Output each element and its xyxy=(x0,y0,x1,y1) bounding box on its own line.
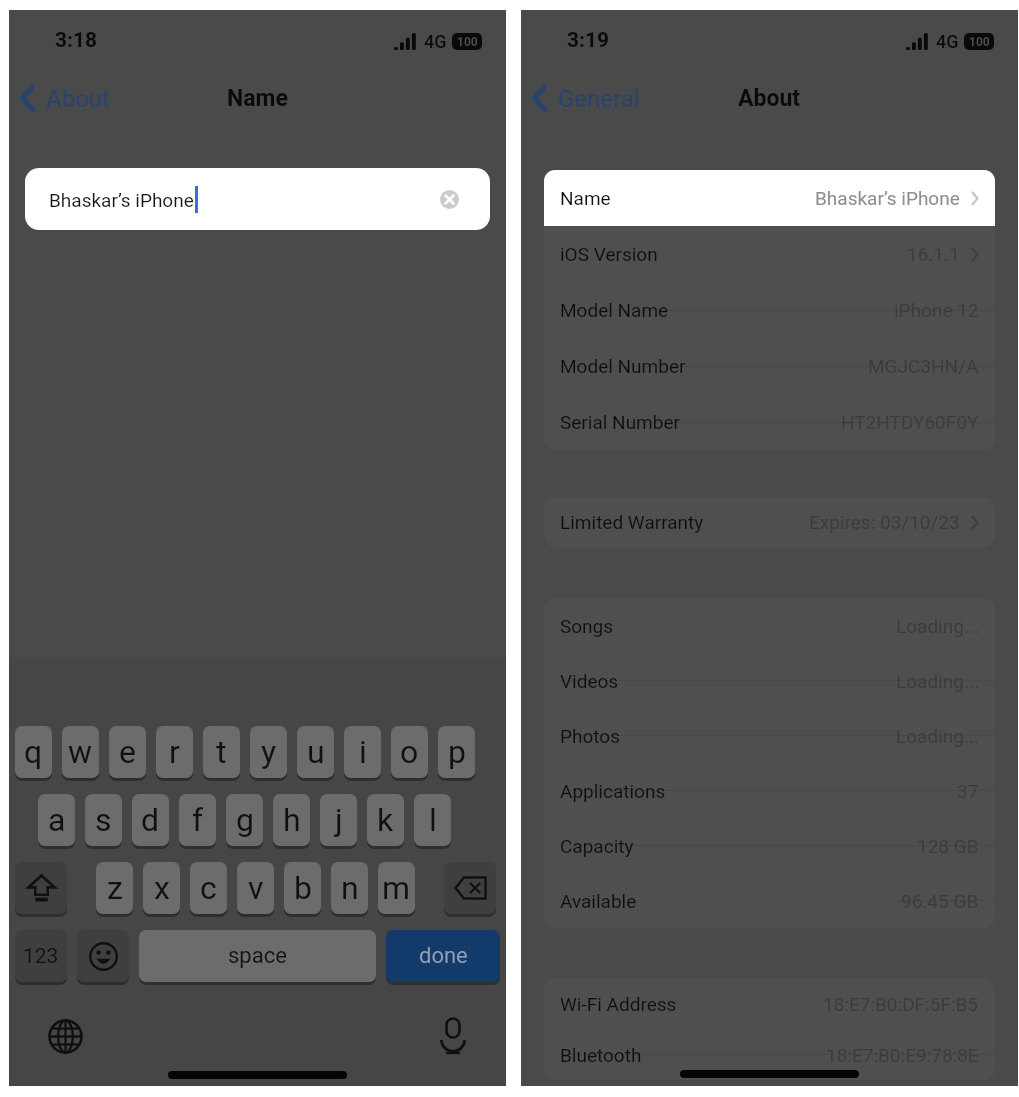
button[interactable]: About xyxy=(20,84,110,112)
staticText: e xyxy=(119,733,136,771)
button[interactable]: Model Number xyxy=(544,338,995,394)
staticText: q xyxy=(24,733,43,771)
button[interactable]: l xyxy=(414,794,451,846)
staticText: Photos xyxy=(560,725,620,747)
staticText: Applications xyxy=(560,780,666,802)
button[interactable]: w xyxy=(62,726,99,778)
button[interactable]: n xyxy=(331,862,368,914)
staticText: a xyxy=(48,801,66,839)
staticText: Bluetooth xyxy=(560,1044,642,1066)
staticText: m xyxy=(382,869,411,907)
button[interactable]: Bluetooth xyxy=(544,1029,995,1080)
staticText: i xyxy=(359,733,367,771)
button[interactable]: Change keyboard xyxy=(41,1012,89,1060)
button[interactable]: Emoji keyboard xyxy=(77,930,129,982)
button[interactable]: Backspace xyxy=(444,862,496,914)
button[interactable]: Bhaskar’s iPhone xyxy=(25,168,490,230)
button[interactable]: v xyxy=(237,862,274,914)
staticText: p xyxy=(448,733,466,771)
button[interactable]: 123 xyxy=(15,930,67,982)
staticText: Songs xyxy=(560,615,614,637)
button[interactable]: Name xyxy=(544,170,995,226)
staticText: Capacity xyxy=(560,835,634,857)
staticText: y xyxy=(261,733,277,771)
staticText: 4G xyxy=(424,31,447,52)
staticText: n xyxy=(341,869,359,907)
staticText: Loading... xyxy=(896,670,979,692)
button[interactable]: s xyxy=(85,794,122,846)
staticText: 100 xyxy=(457,35,478,49)
button[interactable]: Capacity xyxy=(544,818,995,873)
button[interactable]: h xyxy=(273,794,310,846)
staticText: iPhone 12 xyxy=(894,299,979,321)
staticText: c xyxy=(200,869,217,907)
staticText: space xyxy=(228,943,287,969)
staticText: Bhaskar’s iPhone xyxy=(49,189,194,211)
button[interactable]: b xyxy=(284,862,321,914)
staticText: 3:18 xyxy=(55,28,98,53)
button[interactable]: q xyxy=(15,726,52,778)
staticText: Available xyxy=(560,890,637,912)
staticText: done xyxy=(419,943,468,969)
staticText: About xyxy=(46,85,110,113)
button[interactable]: o xyxy=(391,726,428,778)
staticText: Bhaskar’s iPhone xyxy=(815,187,960,209)
button[interactable]: Applications xyxy=(544,763,995,818)
button[interactable]: space xyxy=(139,930,376,982)
button[interactable]: x xyxy=(143,862,180,914)
staticText: f xyxy=(192,801,204,839)
staticText: v xyxy=(248,869,264,907)
button[interactable]: k xyxy=(367,794,404,846)
staticText: 96.45 GB xyxy=(901,890,979,912)
button[interactable]: Limited Warranty xyxy=(544,497,995,547)
button[interactable]: Serial Number xyxy=(544,394,995,450)
button[interactable]: Shift xyxy=(15,862,67,914)
staticText: General xyxy=(558,85,640,113)
button[interactable]: done xyxy=(386,930,500,982)
button[interactable]: Videos xyxy=(544,653,995,708)
button[interactable]: m xyxy=(378,862,415,914)
staticText: k xyxy=(377,801,394,839)
button[interactable]: t xyxy=(203,726,240,778)
button[interactable]: Model Name xyxy=(544,282,995,338)
button[interactable]: p xyxy=(438,726,475,778)
button[interactable]: d xyxy=(132,794,169,846)
staticText: Loading... xyxy=(896,725,979,747)
staticText: t xyxy=(216,733,227,771)
button[interactable]: z xyxy=(96,862,133,914)
staticText: Model Name xyxy=(560,299,669,321)
staticText: r xyxy=(169,733,180,771)
staticText: l xyxy=(429,801,437,839)
button[interactable]: f xyxy=(179,794,216,846)
button[interactable]: e xyxy=(109,726,146,778)
button[interactable]: Songs xyxy=(544,598,995,653)
button[interactable]: u xyxy=(297,726,334,778)
button[interactable]: r xyxy=(156,726,193,778)
staticText: 128 GB xyxy=(917,835,979,857)
button[interactable]: Photos xyxy=(544,708,995,763)
button[interactable]: Wi-Fi Address xyxy=(544,978,995,1029)
staticText: j xyxy=(335,801,343,839)
button[interactable]: a xyxy=(38,794,75,846)
button[interactable]: iOS Version xyxy=(544,226,995,282)
button[interactable]: Available xyxy=(544,873,995,928)
staticText: h xyxy=(283,801,301,839)
button[interactable]: Clear text xyxy=(440,190,459,209)
button[interactable]: i xyxy=(344,726,381,778)
staticText: 100 xyxy=(969,35,990,49)
staticText: Model Number xyxy=(560,355,686,377)
button[interactable]: c xyxy=(190,862,227,914)
button[interactable]: y xyxy=(250,726,287,778)
staticText: s xyxy=(95,801,112,839)
button[interactable]: g xyxy=(226,794,263,846)
button[interactable]: j xyxy=(320,794,357,846)
button[interactable]: General xyxy=(532,84,640,112)
button[interactable]: Dictation xyxy=(429,1012,477,1060)
staticText: 4G xyxy=(936,31,959,52)
staticText: iOS Version xyxy=(560,243,658,265)
staticText: b xyxy=(294,869,312,907)
staticText: Name xyxy=(560,187,611,209)
staticText: o xyxy=(400,733,419,771)
staticText: Videos xyxy=(560,670,619,692)
staticText: Limited Warranty xyxy=(560,511,704,533)
